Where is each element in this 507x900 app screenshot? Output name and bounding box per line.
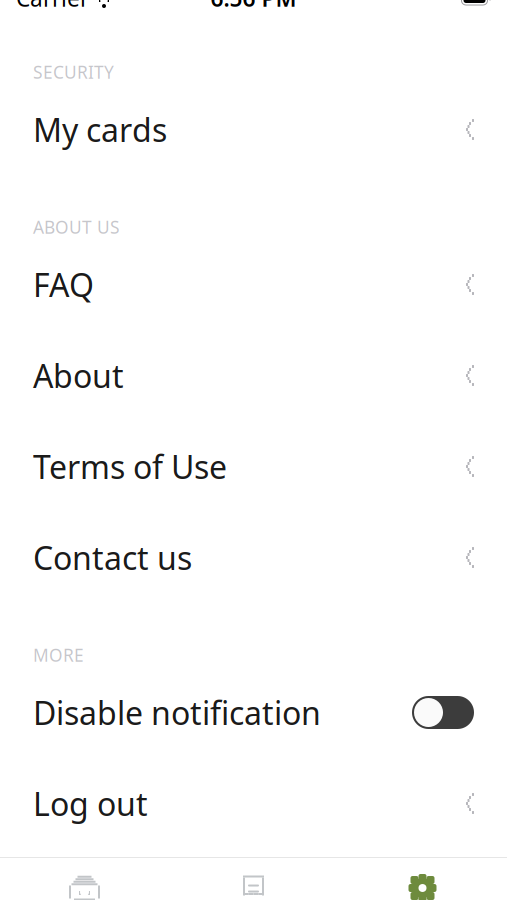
button[interactable]: Terms of Use xyxy=(0,421,507,512)
staticText: Disable notification xyxy=(33,691,321,734)
staticText: FAQ xyxy=(33,263,94,306)
staticText: SECURITY xyxy=(33,60,114,83)
staticText: Log out xyxy=(33,782,148,825)
button[interactable]: Disable notification xyxy=(0,667,507,758)
button[interactable]: Orders xyxy=(169,858,338,900)
staticText: Carrier xyxy=(16,0,89,13)
staticText: 6:56 PM xyxy=(210,0,296,13)
button[interactable]: Log out xyxy=(0,758,507,849)
staticText: About xyxy=(33,354,124,397)
button[interactable]: About xyxy=(0,330,507,421)
button[interactable]: Shop xyxy=(0,858,169,900)
staticText: Contact us xyxy=(33,536,192,579)
staticText: MORE xyxy=(33,643,84,666)
button[interactable]: Settings xyxy=(338,858,507,900)
button[interactable]: My cards xyxy=(0,84,507,175)
staticText: My cards xyxy=(33,108,167,151)
staticText: Terms of Use xyxy=(33,445,227,488)
button[interactable]: Contact us xyxy=(0,512,507,603)
staticText: ABOUT US xyxy=(33,215,120,238)
button[interactable]: FAQ xyxy=(0,239,507,330)
